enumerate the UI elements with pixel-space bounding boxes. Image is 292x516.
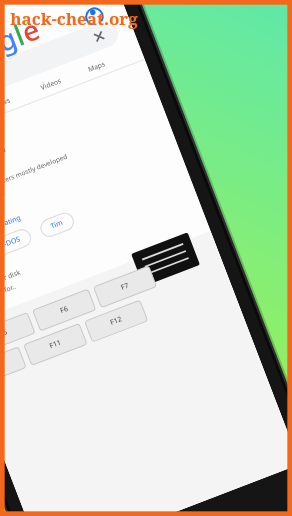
button[interactable]: Legacy DOS system app promo artwork <box>0 0 292 516</box>
